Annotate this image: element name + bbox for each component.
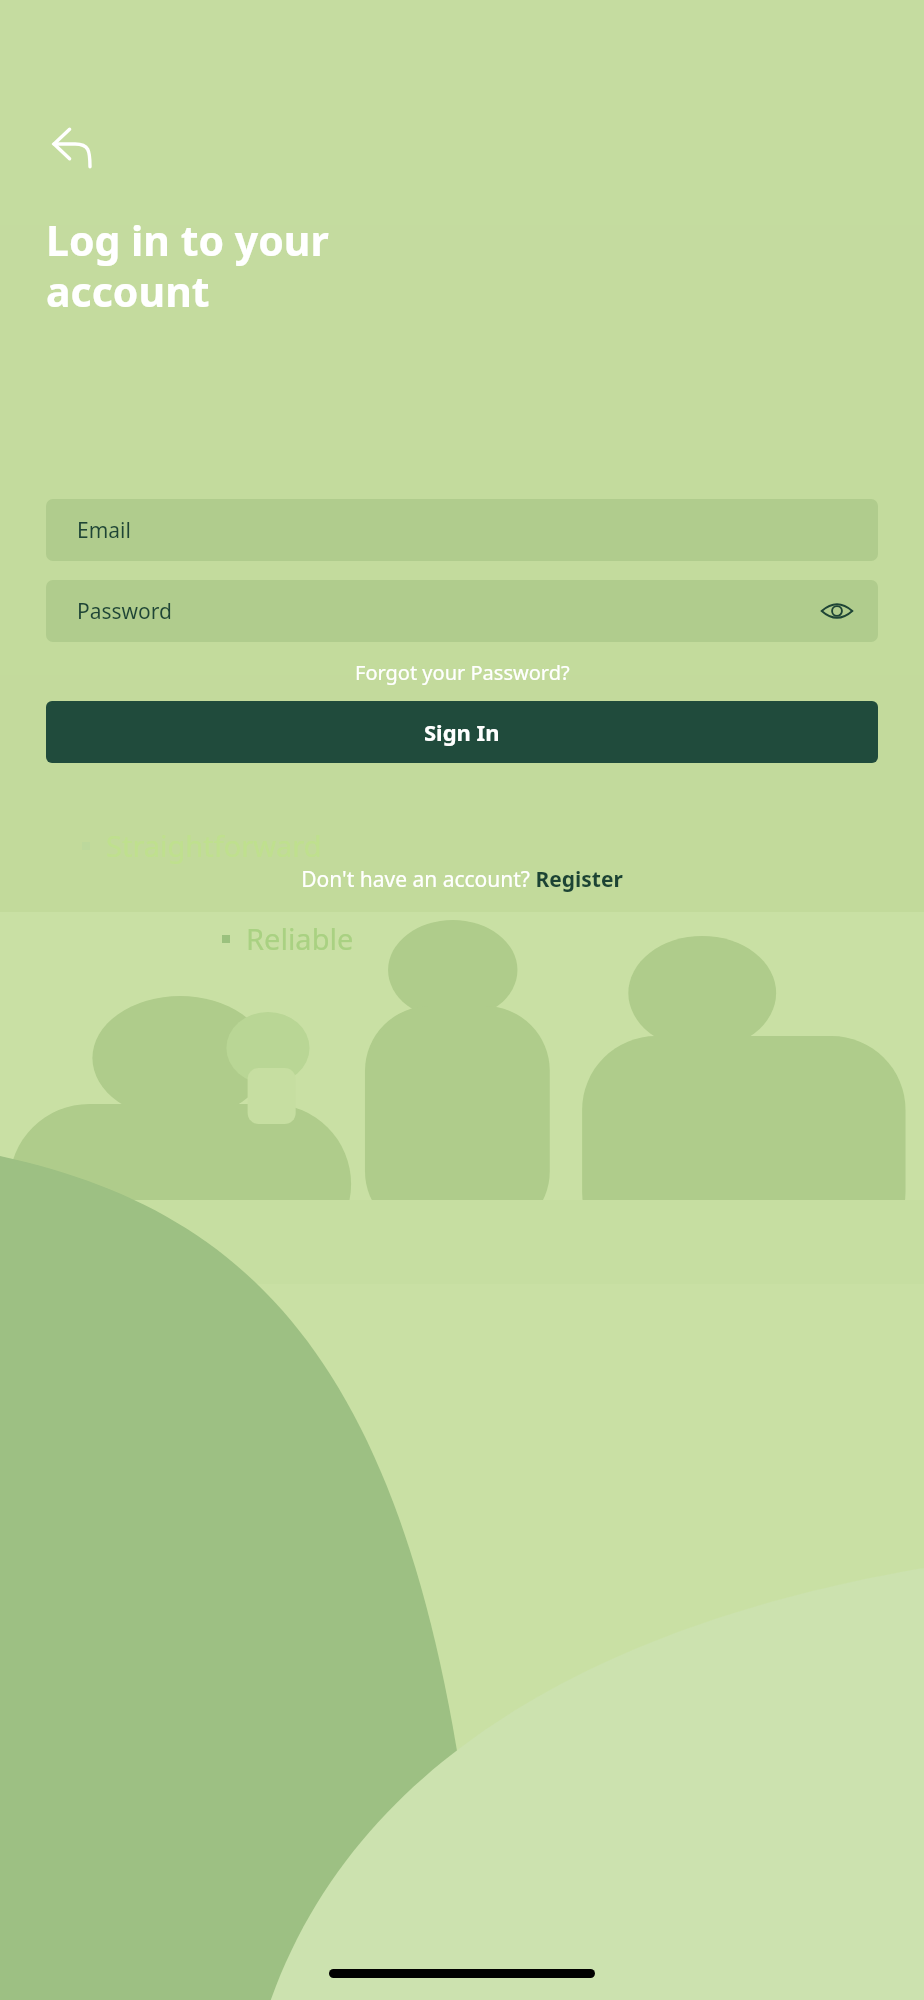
staticText: Reliable bbox=[246, 919, 354, 958]
button[interactable]: Password bbox=[46, 580, 878, 642]
button[interactable]: Forgot your Password? bbox=[0, 650, 924, 695]
staticText: Sign In bbox=[424, 717, 500, 747]
button[interactable]: Sign In bbox=[46, 701, 878, 763]
button[interactable]: Don't have an account? Register bbox=[281, 855, 643, 904]
staticText: Forgot your Password? bbox=[355, 659, 570, 686]
staticText: Email bbox=[77, 516, 131, 545]
button[interactable]: Show password bbox=[816, 590, 858, 632]
button[interactable]: Back bbox=[44, 118, 100, 174]
staticText: Don't have an account? Register bbox=[301, 865, 623, 894]
button[interactable]: Email bbox=[46, 499, 878, 561]
staticText: Log in to your account bbox=[46, 212, 329, 319]
staticText: Straightforward bbox=[106, 826, 322, 865]
staticText: Password bbox=[77, 597, 172, 626]
